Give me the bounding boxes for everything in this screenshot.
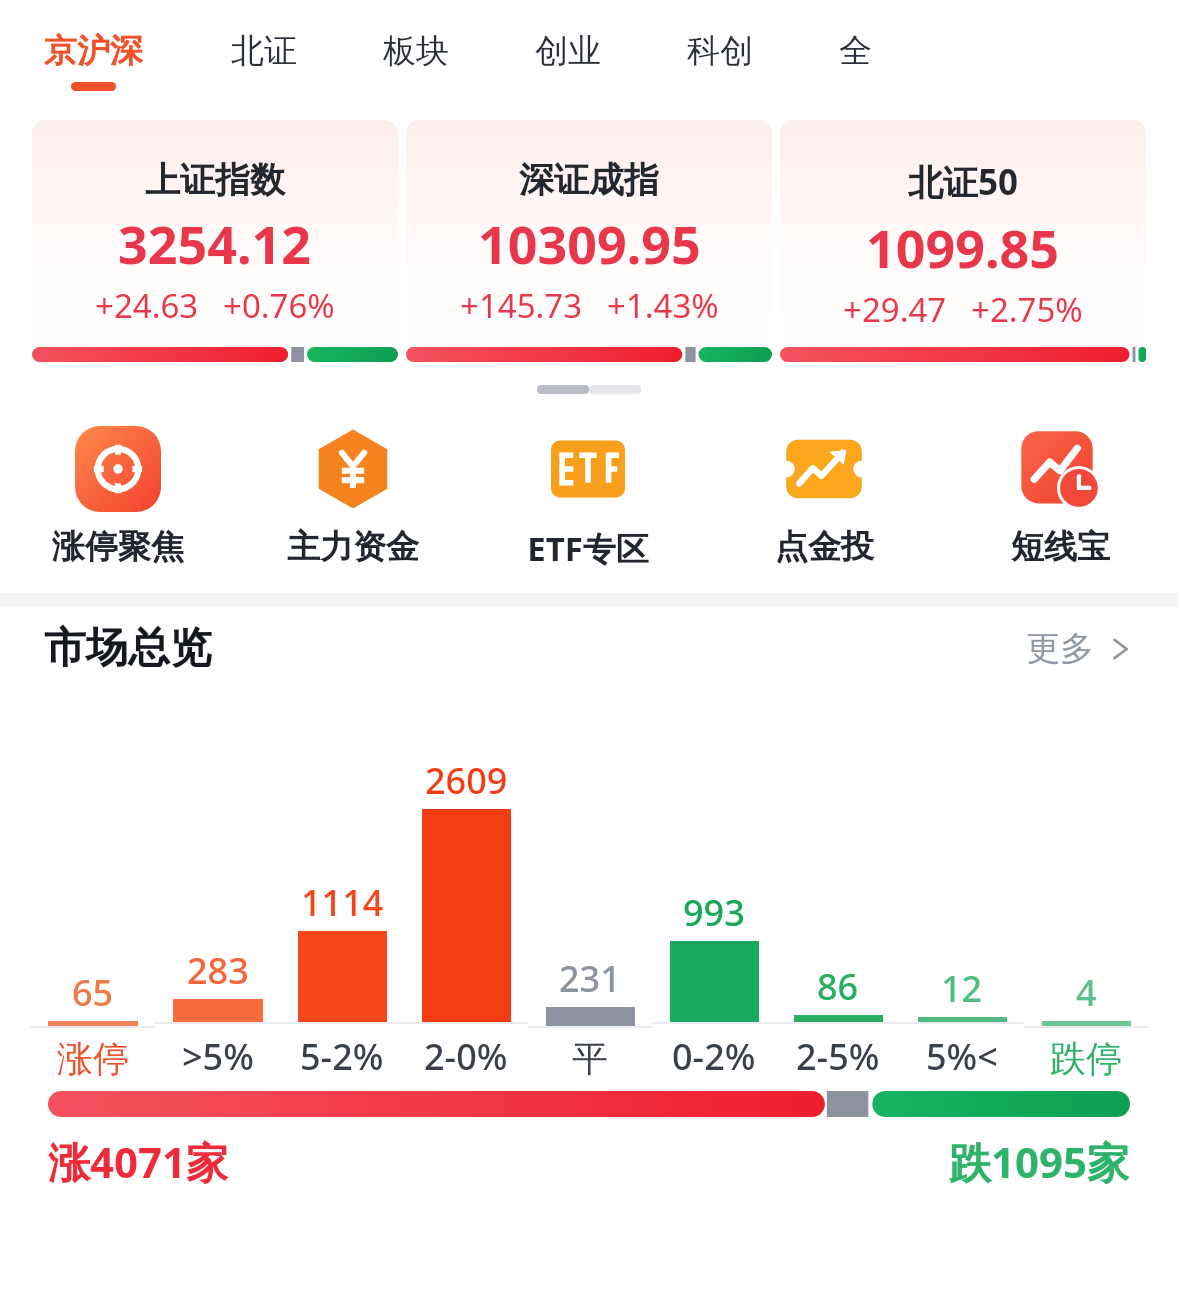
button[interactable]: 市场总览 [0, 622, 1178, 675]
staticText: >5% [182, 1032, 254, 1081]
staticText: +145.73 [460, 283, 583, 328]
button[interactable]: 主力资金 [235, 426, 470, 568]
staticText: +29.47 [843, 287, 947, 332]
staticText: 231 [559, 954, 621, 1003]
staticText: +1.43% [607, 283, 719, 328]
staticText: 2-5% [796, 1032, 880, 1081]
staticText: 科创 [687, 30, 753, 72]
staticText: 1099.85 [866, 212, 1060, 283]
staticText: 市场总览 [44, 622, 212, 675]
staticText: 12 [941, 964, 983, 1013]
button[interactable]: 点金投 [706, 426, 942, 568]
button[interactable]: 上证指数 [32, 120, 398, 378]
button[interactable]: 北证 [227, 0, 301, 82]
button[interactable]: 北证50 [780, 120, 1146, 378]
staticText: ETF专区 [527, 526, 649, 571]
button[interactable]: 科创 [683, 0, 757, 82]
button[interactable]: 短线宝 [942, 426, 1178, 568]
staticText: 北证50 [908, 158, 1019, 206]
staticText: 更多 [1026, 627, 1094, 670]
staticText: 点金投 [775, 526, 874, 568]
staticText: 283 [187, 946, 249, 995]
button[interactable]: ETF专区 [470, 426, 706, 571]
staticText: 涨停聚焦 [52, 526, 184, 568]
staticText: 跌1095家 [949, 1133, 1130, 1190]
staticText: 1114 [301, 878, 384, 927]
staticText: 4 [1076, 968, 1097, 1017]
staticText: +2.75% [971, 287, 1083, 332]
staticText: 深证成指 [519, 158, 659, 202]
button[interactable]: 全 [835, 0, 876, 82]
staticText: 全 [839, 30, 872, 72]
button[interactable]: 板块 [379, 0, 453, 82]
button[interactable]: 深证成指 [406, 120, 772, 378]
staticText: 65 [72, 968, 114, 1017]
staticText: 创业 [535, 30, 601, 72]
staticText: 5%< [926, 1032, 998, 1081]
staticText: +0.76% [223, 283, 335, 328]
staticText: 北证 [231, 30, 297, 72]
staticText: 5-2% [300, 1032, 384, 1081]
button[interactable]: 京沪深 [40, 0, 147, 91]
staticText: 跌停 [1050, 1036, 1122, 1081]
staticText: 短线宝 [1011, 526, 1110, 568]
button[interactable]: 创业 [531, 0, 605, 82]
staticText: 3254.12 [118, 208, 312, 279]
staticText: 涨4071家 [48, 1133, 229, 1190]
staticText: 板块 [383, 30, 449, 72]
staticText: 2609 [425, 756, 508, 805]
staticText: 京沪深 [44, 30, 143, 72]
staticText: +24.63 [95, 283, 199, 328]
staticText: 993 [683, 888, 745, 937]
staticText: 2-0% [424, 1032, 508, 1081]
button[interactable]: 涨停聚焦 [0, 426, 235, 568]
staticText: 上证指数 [145, 158, 285, 202]
staticText: 10309.95 [478, 208, 701, 279]
staticText: 平 [572, 1036, 608, 1081]
staticText: 主力资金 [287, 526, 419, 568]
staticText: 0-2% [672, 1032, 756, 1081]
staticText: 涨停 [57, 1036, 129, 1081]
staticText: 86 [817, 962, 859, 1011]
